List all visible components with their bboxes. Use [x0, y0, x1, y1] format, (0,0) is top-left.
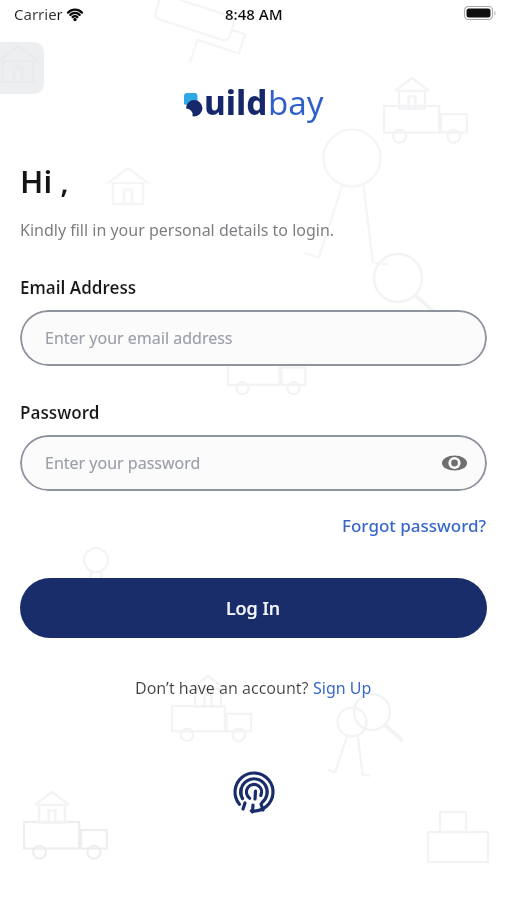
- staticText: Carrier: [14, 4, 63, 24]
- button[interactable]: Enter your email address: [20, 310, 487, 366]
- button[interactable]: Enter your password: [20, 435, 487, 491]
- staticText: Enter your email address: [45, 327, 233, 349]
- staticText: Sign Up: [313, 677, 372, 699]
- button[interactable]: Sign Up: [313, 677, 372, 699]
- staticText: Email Address: [20, 276, 137, 299]
- staticText: 8:48 AM: [225, 4, 283, 24]
- staticText: bay: [268, 80, 324, 125]
- staticText: Kindly fill in your personal details to …: [20, 219, 335, 241]
- button[interactable]: [232, 770, 276, 818]
- button[interactable]: Log In: [20, 578, 487, 638]
- staticText: uild: [204, 80, 268, 125]
- staticText: Hi ,: [20, 160, 69, 202]
- staticText: Forgot password?: [342, 514, 487, 537]
- staticText: Password: [20, 401, 100, 424]
- staticText: Log In: [226, 596, 281, 621]
- staticText: Don’t have an account?: [135, 677, 313, 699]
- button[interactable]: Forgot password?: [342, 514, 487, 537]
- staticText: Enter your password: [45, 452, 201, 474]
